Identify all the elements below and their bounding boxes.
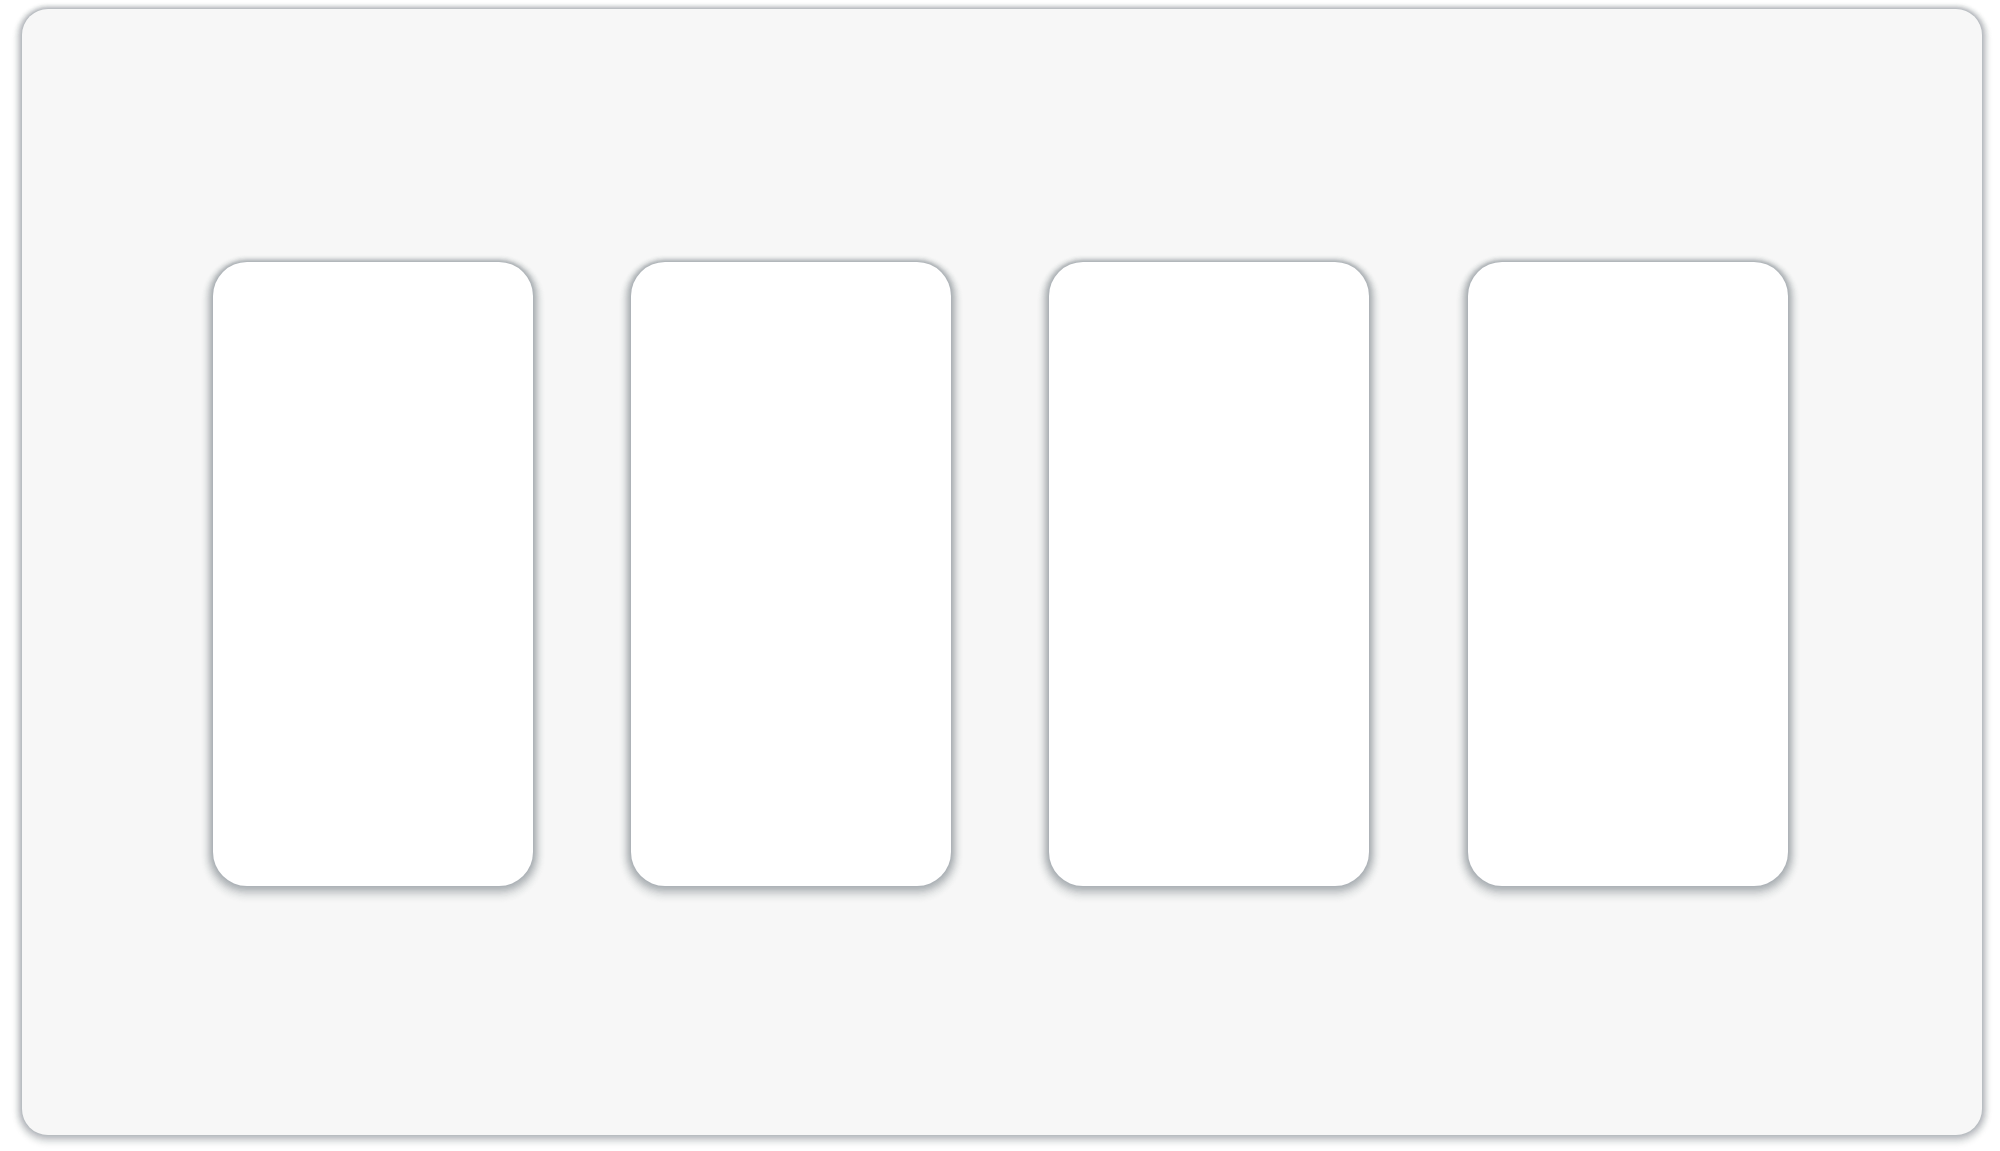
button[interactable]: Tile 2: [631, 262, 951, 886]
button[interactable]: Tile 3: [1049, 262, 1369, 886]
button[interactable]: Tile 1: [213, 262, 533, 886]
button[interactable]: Tile 4: [1468, 262, 1788, 886]
